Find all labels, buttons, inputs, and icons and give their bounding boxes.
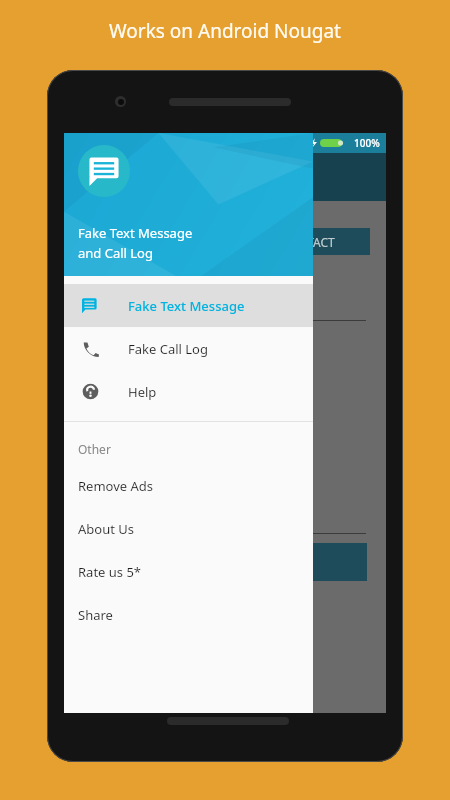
button[interactable]: Fake Call Log (64, 327, 313, 370)
staticText: Other (78, 441, 111, 457)
staticText: Fake Call Log (128, 340, 208, 358)
staticText: About Us (78, 520, 135, 538)
staticText: Rate us 5* (78, 563, 142, 581)
staticText: 7:04 PM (71, 136, 109, 150)
button[interactable]: NTACT (296, 228, 370, 255)
staticText: Remove Ads (78, 477, 154, 495)
other: Fake Call Log (82, 340, 99, 357)
staticText: NTACT (298, 234, 335, 250)
button[interactable]: Share (64, 593, 313, 636)
button[interactable]: Remove Ads (64, 464, 313, 507)
button[interactable]: Rate us 5* (64, 550, 313, 593)
button[interactable]: Fake Text Message (64, 284, 313, 327)
other: Help (82, 383, 99, 400)
button[interactable]: Help (64, 370, 313, 413)
staticText: Fake Text Message (128, 297, 245, 315)
staticText: Share (78, 606, 113, 624)
staticText: Works on Android Nougat (109, 18, 341, 44)
button[interactable]: About Us (64, 507, 313, 550)
staticText: Fake Text Message (78, 224, 193, 242)
staticText: Help (128, 383, 157, 401)
staticText: and Call Log (78, 244, 153, 262)
staticText: 100% (354, 136, 380, 150)
other: Fake Text Message (82, 297, 99, 314)
